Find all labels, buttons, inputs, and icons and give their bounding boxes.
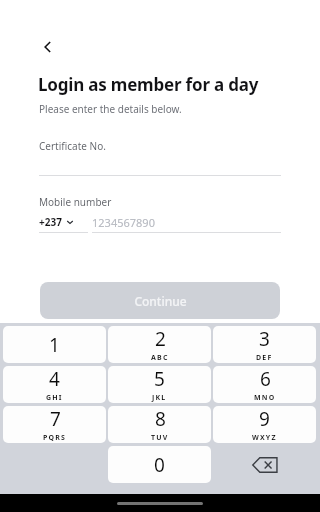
staticText: TUV	[151, 433, 169, 443]
staticText: 1	[49, 332, 60, 358]
staticText: Certificate No.	[39, 139, 106, 153]
staticText: Login as member for a day	[38, 73, 259, 96]
staticText: +237	[39, 215, 62, 229]
staticText: PQRS	[43, 433, 67, 443]
staticText: WXYZ	[252, 433, 277, 443]
staticText: 6	[260, 366, 271, 392]
button[interactable]: Back	[34, 33, 62, 61]
staticText: JKL	[152, 393, 167, 403]
button[interactable]: 3	[213, 326, 316, 363]
staticText: Mobile number	[39, 195, 112, 209]
staticText: ABC	[151, 353, 169, 363]
staticText: 5	[154, 366, 165, 392]
button[interactable]: Continue	[40, 282, 280, 319]
button[interactable]: 6	[213, 366, 316, 403]
button[interactable]: 4	[3, 366, 106, 403]
button[interactable]: +237	[39, 212, 88, 232]
staticText: 0	[154, 452, 165, 478]
button[interactable]: Backspace	[213, 446, 316, 483]
button[interactable]: Certificate number input	[39, 150, 281, 176]
staticText: GHI	[46, 393, 63, 403]
staticText: 8	[155, 406, 166, 432]
button[interactable]: 0	[108, 446, 211, 483]
staticText: 7	[50, 406, 61, 432]
staticText: Please enter the details below.	[39, 102, 182, 116]
staticText: 4	[49, 366, 60, 392]
staticText: 1234567890	[92, 215, 155, 230]
button[interactable]: 1	[3, 326, 106, 363]
staticText: DEF	[256, 353, 273, 363]
button[interactable]: 8	[108, 406, 211, 443]
button[interactable]: 9	[213, 406, 316, 443]
staticText: Continue	[134, 293, 187, 309]
button[interactable]: Phone number input	[92, 212, 281, 232]
staticText: 9	[259, 406, 270, 432]
button[interactable]: 7	[3, 406, 106, 443]
staticText: 3	[259, 326, 270, 352]
button[interactable]: 5	[108, 366, 211, 403]
button[interactable]: 2	[108, 326, 211, 363]
staticText: 2	[155, 326, 166, 352]
staticText: MNO	[254, 393, 276, 403]
